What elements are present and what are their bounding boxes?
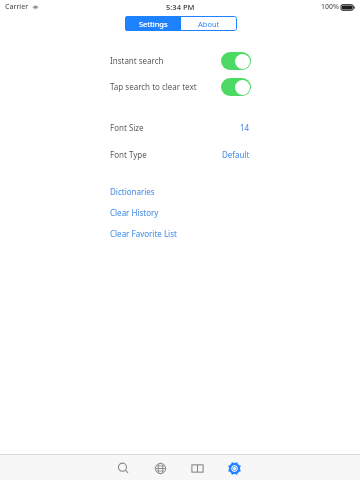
button[interactable] <box>221 52 251 70</box>
button[interactable]: Instant search <box>0 50 360 71</box>
staticText: 100% <box>321 2 339 12</box>
staticText: Settings <box>139 19 168 29</box>
staticText: Clear Favorite List <box>110 228 177 239</box>
button[interactable]: Clear Favorite List <box>0 223 360 244</box>
staticText: 5:34 PM <box>166 2 195 12</box>
button[interactable]: Settings <box>125 16 181 31</box>
staticText: Tap search to clear text <box>110 81 197 92</box>
staticText: Clear History <box>110 207 159 218</box>
button[interactable]: Font Type <box>0 144 360 164</box>
button[interactable] <box>221 78 251 96</box>
button[interactable]: Search <box>114 457 132 479</box>
staticText: About <box>198 19 220 29</box>
staticText: Font Type <box>110 149 147 160</box>
button[interactable]: About <box>181 16 237 31</box>
staticText: Dictionaries <box>110 186 155 197</box>
button[interactable]: Tap search to clear text <box>0 76 360 97</box>
staticText: Font Size <box>110 122 144 133</box>
button[interactable]: Dictionaries <box>0 181 360 202</box>
button[interactable]: Translate <box>151 457 169 479</box>
staticText: 14 <box>240 122 250 133</box>
button[interactable]: Dictionary <box>188 457 206 479</box>
staticText: Default <box>222 149 250 160</box>
staticText: Carrier <box>5 2 29 12</box>
staticText: Instant search <box>110 55 164 66</box>
button[interactable]: Settings <box>225 457 243 479</box>
button[interactable]: Font Size <box>0 117 360 137</box>
button[interactable]: Clear History <box>0 202 360 223</box>
